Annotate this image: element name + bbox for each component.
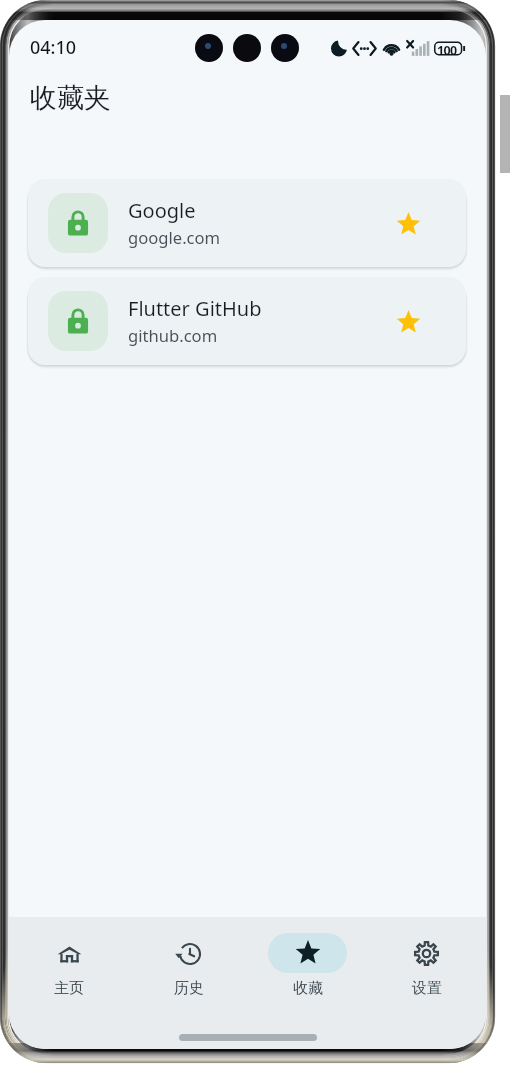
staticText: google.com	[128, 226, 221, 249]
staticText: 100	[437, 42, 457, 59]
staticText: 主页	[54, 979, 84, 998]
staticText: github.com	[128, 324, 218, 347]
button[interactable]: 历史	[129, 933, 248, 998]
staticText: 历史	[174, 979, 204, 998]
staticText: 04:10	[30, 35, 77, 60]
button[interactable]: 设置	[367, 933, 486, 998]
button[interactable]: Remove bookmark	[384, 297, 432, 345]
button[interactable]: 收藏	[248, 933, 367, 998]
button[interactable]: Flutter GitHub	[28, 277, 466, 365]
staticText: 收藏夹	[30, 81, 111, 115]
button[interactable]: 主页	[9, 933, 129, 998]
staticText: 收藏	[293, 979, 323, 998]
button[interactable]: Remove bookmark	[384, 199, 432, 247]
button[interactable]: Google	[28, 179, 466, 267]
staticText: Google	[128, 197, 196, 224]
staticText: Flutter GitHub	[128, 295, 262, 322]
staticText: 设置	[412, 979, 442, 998]
